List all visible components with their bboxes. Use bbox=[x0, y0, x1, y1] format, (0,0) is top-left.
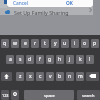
button[interactable]: q bbox=[1, 39, 9, 48]
staticText: f bbox=[39, 56, 41, 63]
button[interactable]: x bbox=[26, 72, 34, 81]
button[interactable]: Cancel bbox=[13, 0, 28, 7]
button[interactable]: t bbox=[41, 39, 49, 48]
button[interactable]: e bbox=[21, 39, 29, 48]
staticText: u bbox=[63, 40, 67, 47]
staticText: r bbox=[34, 40, 37, 47]
button[interactable]: 123 bbox=[1, 90, 9, 100]
staticText: d bbox=[28, 56, 32, 63]
button[interactable]: r bbox=[31, 39, 39, 48]
staticText: m bbox=[78, 73, 83, 80]
button[interactable]: a bbox=[6, 55, 14, 64]
button[interactable]: Backspace bbox=[86, 72, 99, 81]
button[interactable]: search bbox=[77, 90, 100, 100]
staticText: c bbox=[39, 73, 42, 80]
staticText: k bbox=[79, 56, 82, 63]
staticText: l bbox=[89, 56, 91, 63]
staticText: o bbox=[83, 40, 87, 47]
staticText: n bbox=[68, 73, 72, 80]
staticText: j bbox=[69, 56, 71, 63]
staticText: q bbox=[3, 40, 7, 47]
staticText: y bbox=[54, 40, 57, 47]
button[interactable]: j bbox=[66, 55, 74, 64]
button[interactable]: h bbox=[56, 55, 64, 64]
button[interactable]: g bbox=[46, 55, 54, 64]
button[interactable] bbox=[0, 7, 93, 15]
staticText: b bbox=[58, 73, 62, 80]
button[interactable]: p bbox=[91, 39, 99, 48]
button[interactable]: b bbox=[56, 72, 64, 81]
button[interactable]: o bbox=[81, 39, 89, 48]
staticText: p bbox=[93, 40, 97, 47]
staticText: t bbox=[44, 40, 46, 47]
button[interactable]: Emoji keyboard bbox=[11, 90, 19, 100]
staticText: i bbox=[74, 40, 76, 47]
button[interactable]: Shift bbox=[1, 72, 12, 81]
button[interactable]: y bbox=[51, 39, 59, 48]
staticText: h bbox=[58, 56, 62, 63]
staticText: x bbox=[29, 73, 32, 80]
button[interactable]: d bbox=[26, 55, 34, 64]
staticText: space bbox=[44, 93, 55, 98]
button[interactable]: k bbox=[76, 55, 84, 64]
button[interactable]: n bbox=[66, 72, 74, 81]
button[interactable]: i bbox=[71, 39, 79, 48]
staticText: v bbox=[49, 73, 52, 80]
button[interactable]: OK bbox=[66, 0, 73, 7]
button[interactable]: s bbox=[16, 55, 24, 64]
button[interactable]: u bbox=[61, 39, 69, 48]
button[interactable]: m bbox=[76, 72, 84, 81]
staticText: 123 bbox=[2, 93, 9, 98]
button[interactable]: v bbox=[46, 72, 54, 81]
staticText: Set Up Family Sharing bbox=[14, 9, 69, 16]
staticText: w bbox=[13, 40, 17, 47]
button[interactable]: space bbox=[24, 90, 74, 100]
staticText: g bbox=[48, 56, 52, 63]
button[interactable]: c bbox=[36, 72, 44, 81]
button[interactable]: f bbox=[36, 55, 44, 64]
staticText: a bbox=[9, 56, 12, 63]
staticText: s bbox=[19, 56, 22, 63]
button[interactable]: w bbox=[11, 39, 19, 48]
staticText: search bbox=[82, 93, 95, 98]
staticText: z bbox=[19, 73, 22, 80]
button[interactable]: l bbox=[86, 55, 94, 64]
staticText: e bbox=[24, 40, 27, 47]
button[interactable]: z bbox=[16, 72, 24, 81]
